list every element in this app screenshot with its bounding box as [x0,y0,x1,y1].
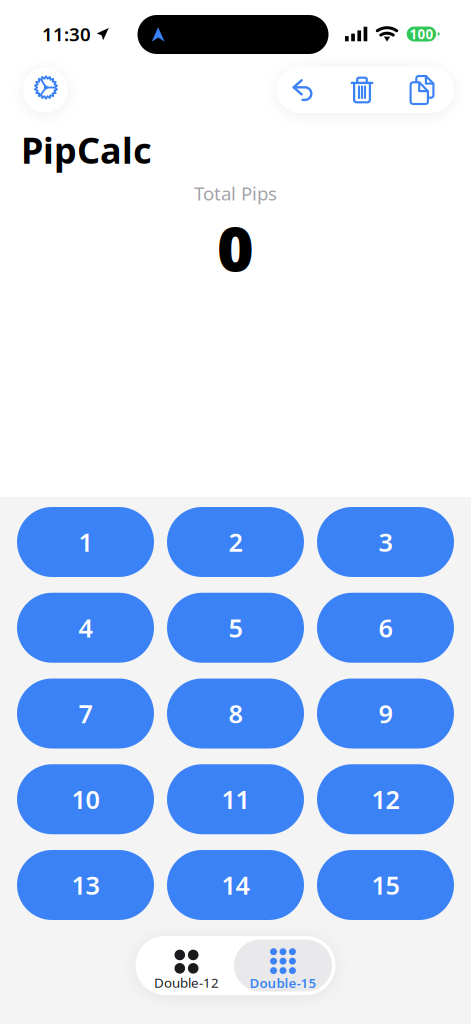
button[interactable]: Settings [23,67,68,112]
staticText: 7 [78,697,92,730]
button[interactable]: 13 [17,850,154,920]
staticText: 1 [78,525,92,559]
button[interactable]: 3 [317,507,454,577]
button[interactable]: 14 [167,850,304,920]
staticText: 10 [71,782,99,816]
staticText: 3 [378,525,392,559]
button[interactable]: Delete [336,67,395,113]
button[interactable]: 1 [17,507,154,577]
staticText: 5 [228,611,242,644]
button[interactable]: 10 [17,764,154,834]
button[interactable]: 8 [167,678,304,748]
button[interactable]: 9 [317,678,454,748]
button[interactable]: Double-15 [234,939,332,991]
staticText: 6 [378,611,392,644]
staticText: 0 [217,206,254,289]
staticText: 12 [371,782,399,816]
staticText: 4 [78,611,92,644]
staticText: 8 [228,697,242,730]
staticText: 2 [228,525,242,559]
button[interactable]: Undo [277,67,336,113]
staticText: Double-12 [154,974,219,991]
staticText: 100 [409,25,433,43]
button[interactable]: 6 [317,593,454,663]
staticText: Total Pips [194,181,277,206]
staticText: 11 [221,782,249,816]
staticText: 13 [71,868,99,902]
staticText: Double-15 [249,974,316,992]
button[interactable]: 12 [317,764,454,834]
staticText: 14 [221,868,249,902]
staticText: PipCalc [21,126,152,174]
button[interactable]: 11 [167,764,304,834]
button[interactable]: 7 [17,678,154,748]
staticText: 11:30 [42,22,91,46]
staticText: 15 [371,868,399,902]
button[interactable]: Duplicate [395,67,454,113]
button[interactable]: Double-12 [139,939,234,991]
button[interactable]: 5 [167,593,304,663]
button[interactable]: 2 [167,507,304,577]
staticText: 9 [378,697,392,730]
button[interactable]: 15 [317,850,454,920]
button[interactable]: 4 [17,593,154,663]
